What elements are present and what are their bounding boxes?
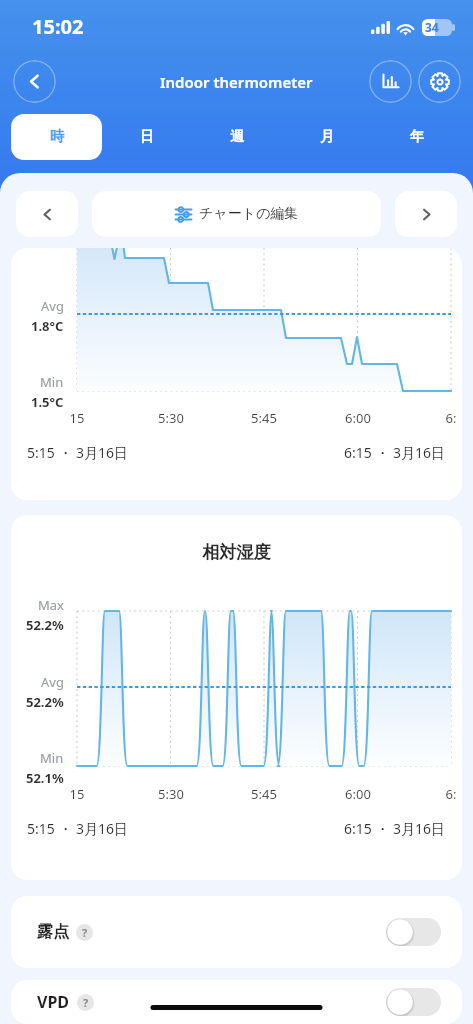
button[interactable]: 年 [372,114,462,160]
staticText: チャートの編集 [199,205,299,223]
button[interactable]: 露点 [11,896,462,968]
staticText: 6: [429,409,462,427]
button[interactable]: Toggle VPD [386,988,441,1016]
staticText: 5:30 [149,785,193,803]
staticText: 15:02 [32,13,84,40]
staticText: 34 [425,19,439,35]
staticText: 相対湿度 [11,542,462,563]
button[interactable]: Back [13,60,56,103]
button[interactable]: 週 [192,114,282,160]
button[interactable]: 月 [282,114,372,160]
button[interactable]: Next period [395,191,457,237]
staticText: 5:45 [242,785,286,803]
button[interactable]: Toggle 露点 [386,918,441,946]
button[interactable]: チャートの編集 [92,191,381,237]
staticText: 週 [230,128,244,146]
staticText: 5:15 ・ 3月16日 [27,819,129,838]
staticText: 15 [55,409,99,427]
staticText: Indoor thermometer [160,72,313,92]
staticText: 月 [320,128,334,146]
staticText: 5:15 ・ 3月16日 [27,443,129,462]
button[interactable]: VPD [11,980,462,1024]
staticText: 15 [55,785,99,803]
staticText: 5:45 [242,409,286,427]
staticText: 6:15 ・ 3月16日 [344,443,446,462]
staticText: Avg [41,297,64,315]
staticText: 6:00 [336,785,380,803]
staticText: 時 [50,128,64,146]
staticText: VPD [37,991,70,1013]
staticText: Min [40,749,64,767]
staticText: 日 [140,128,154,146]
staticText: 6:00 [336,409,380,427]
staticText: 露点 [37,922,69,942]
button[interactable]: Statistics [369,60,412,103]
staticText: 52.2% [26,693,64,711]
staticText: 6: [429,785,462,803]
staticText: 52.2% [26,616,64,634]
button[interactable]: 日 [102,114,192,160]
button[interactable]: Previous period [16,191,78,237]
staticText: 5:30 [149,409,193,427]
button[interactable]: 時 [11,114,102,160]
staticText: Max [38,596,64,614]
button[interactable]: Settings [418,60,461,103]
staticText: Min [40,373,64,391]
staticText: 6:15 ・ 3月16日 [344,819,446,838]
staticText: 1.8°C [31,317,64,335]
staticText: 52.1% [26,769,64,787]
staticText: Avg [41,673,64,691]
staticText: ? [83,995,89,1010]
staticText: 年 [410,128,424,146]
staticText: 1.5°C [31,393,64,411]
staticText: ? [82,925,88,940]
